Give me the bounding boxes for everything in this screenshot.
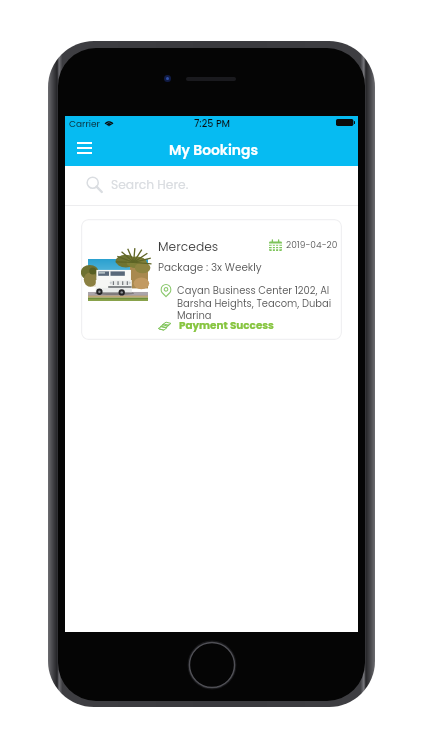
staticText: Package : 3x Weekly <box>158 260 262 275</box>
button[interactable]: Open navigation menu <box>68 132 100 165</box>
button[interactable]: Mercedes <box>81 219 342 340</box>
staticText: Search Here. <box>111 176 189 193</box>
staticText: My Bookings <box>169 140 258 159</box>
staticText: 7:25 PM <box>194 117 231 130</box>
staticText: Payment Success <box>179 318 274 333</box>
staticText: 2019-04-20 <box>286 239 338 252</box>
staticText: Mercedes <box>158 238 219 255</box>
staticText: Cayan Business Center 1202, Al Barsha He… <box>177 284 332 323</box>
staticText: Carrier <box>69 118 100 131</box>
button[interactable]: Search Here. <box>65 166 358 205</box>
